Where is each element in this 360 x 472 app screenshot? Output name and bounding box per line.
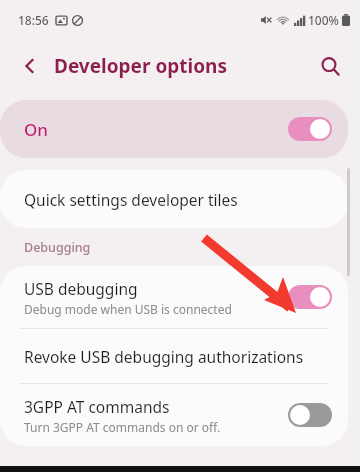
staticText: Debug mode when USB is connected	[24, 301, 232, 317]
button[interactable]: On	[0, 100, 348, 158]
staticText: Developer options	[54, 53, 227, 79]
button[interactable]: Toggle on	[288, 285, 332, 309]
staticText: Revoke USB debugging authorizations	[24, 346, 304, 367]
button[interactable]: Back	[14, 50, 46, 82]
button[interactable]: Search	[314, 50, 346, 82]
staticText: Quick settings developer tiles	[24, 189, 238, 210]
staticText: Debugging	[24, 239, 91, 256]
staticText: USB debugging	[24, 278, 138, 299]
button[interactable]: Toggle on	[288, 117, 332, 141]
staticText: 100%	[308, 12, 339, 28]
staticText: 3GPP AT commands	[24, 396, 170, 417]
button[interactable]: Toggle off	[288, 403, 332, 427]
button[interactable]: Quick settings developer tiles	[0, 170, 348, 228]
button[interactable]: Revoke USB debugging authorizations	[0, 329, 348, 383]
staticText: 18:56	[18, 12, 49, 28]
staticText: Turn 3GPP AT commands on or off.	[24, 419, 221, 435]
button[interactable]: 3GPP AT commands	[0, 384, 348, 446]
staticText: On	[24, 118, 48, 141]
button[interactable]: USB debugging	[0, 266, 348, 328]
